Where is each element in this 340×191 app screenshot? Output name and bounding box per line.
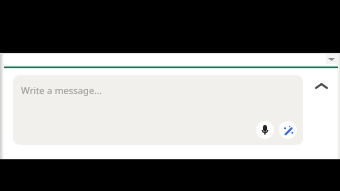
button[interactable]: Scroll down — [326, 54, 338, 64]
staticText: Write a message... — [21, 84, 102, 97]
button[interactable]: Collapse — [309, 76, 333, 96]
button[interactable]: Smart compose — [279, 121, 297, 139]
button[interactable]: Write a message... — [13, 75, 303, 145]
button[interactable]: Voice input — [256, 121, 274, 139]
